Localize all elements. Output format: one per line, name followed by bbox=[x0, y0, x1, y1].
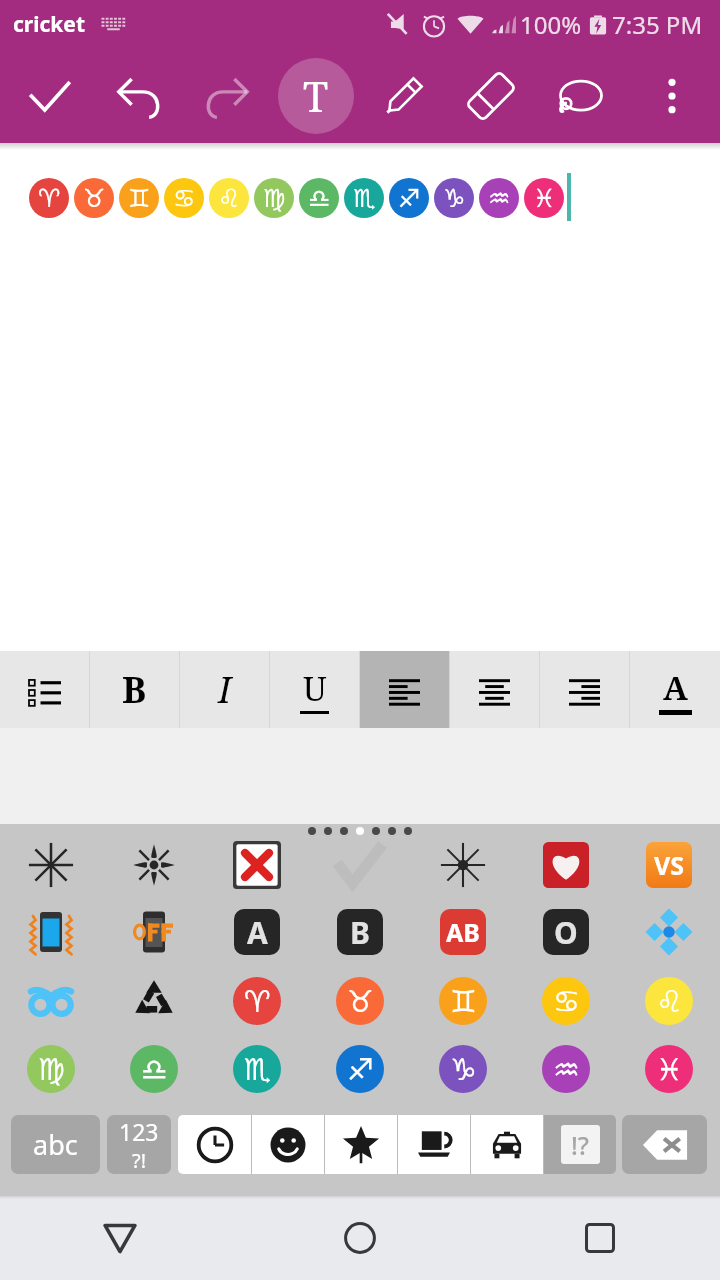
staticText: ♉ bbox=[347, 984, 374, 1019]
button[interactable]: Eight spoked asterisk bbox=[0, 832, 102, 898]
button[interactable]: Aries bbox=[205, 968, 308, 1034]
button[interactable]: Comment bbox=[542, 60, 614, 132]
staticText: ♐ bbox=[347, 1052, 374, 1087]
button[interactable]: Underline bbox=[270, 651, 359, 728]
button[interactable]: Travel and places bbox=[471, 1115, 543, 1174]
button[interactable]: Virgo bbox=[0, 1036, 102, 1102]
button[interactable]: Home bbox=[240, 1196, 480, 1280]
staticText: B bbox=[350, 912, 370, 953]
staticText: ♈ bbox=[244, 984, 271, 1019]
button[interactable]: Food and drink bbox=[398, 1115, 470, 1174]
button[interactable]: Scorpio bbox=[205, 1036, 308, 1102]
button[interactable]: Diamond with a dot bbox=[617, 899, 720, 965]
staticText: ♉ bbox=[83, 184, 106, 213]
button[interactable]: Pen bbox=[368, 60, 440, 132]
button[interactable]: Gemini bbox=[411, 968, 514, 1034]
staticText: U bbox=[303, 666, 327, 711]
button[interactable]: Taurus bbox=[308, 968, 411, 1034]
button[interactable]: Eight pointed star bbox=[411, 832, 514, 898]
staticText: ♑ bbox=[443, 184, 466, 213]
staticText: ♓ bbox=[656, 1052, 683, 1087]
staticText: ♌ bbox=[218, 184, 241, 213]
staticText: A bbox=[663, 665, 688, 710]
button[interactable]: VS button bbox=[617, 832, 720, 898]
button[interactable]: O button bbox=[514, 899, 617, 965]
staticText: abc bbox=[33, 1126, 78, 1163]
button[interactable]: More options bbox=[636, 60, 708, 132]
staticText: B bbox=[122, 665, 147, 714]
button[interactable]: Symbols bbox=[544, 1115, 616, 1174]
button[interactable]: Vibration mode bbox=[0, 899, 102, 965]
button[interactable]: Capricorn bbox=[411, 1036, 514, 1102]
staticText: A bbox=[247, 912, 268, 953]
button[interactable]: B button bbox=[308, 899, 411, 965]
button[interactable]: Eraser bbox=[455, 60, 527, 132]
staticText: ♐ bbox=[398, 184, 421, 213]
button[interactable]: Bold bbox=[90, 651, 179, 728]
button[interactable]: Sagittarius bbox=[308, 1036, 411, 1102]
button[interactable]: Heart decoration bbox=[514, 832, 617, 898]
staticText: 123 bbox=[119, 1116, 159, 1147]
button[interactable]: Done bbox=[14, 60, 86, 132]
button[interactable]: Cross mark button bbox=[205, 832, 308, 898]
staticText: ♏ bbox=[353, 184, 376, 213]
staticText: I bbox=[218, 665, 232, 714]
staticText: ♒ bbox=[488, 184, 511, 213]
button[interactable]: Smileys and people bbox=[252, 1115, 324, 1174]
staticText: ♏ bbox=[244, 1052, 271, 1087]
staticText: cricket bbox=[13, 10, 86, 39]
staticText: 100% bbox=[520, 8, 582, 41]
staticText: ♌ bbox=[656, 984, 683, 1019]
button[interactable]: 123 bbox=[107, 1115, 171, 1174]
staticText: ♈ bbox=[38, 184, 61, 213]
staticText: !? bbox=[571, 1128, 590, 1162]
button[interactable]: A button bbox=[205, 899, 308, 965]
button[interactable]: Backspace bbox=[622, 1115, 707, 1174]
button[interactable]: AB button bbox=[411, 899, 514, 965]
button[interactable]: Align center bbox=[450, 651, 539, 728]
button[interactable]: Text tool bbox=[278, 58, 354, 134]
staticText: ♍ bbox=[38, 1052, 65, 1087]
staticText: ♑ bbox=[450, 1052, 477, 1087]
button[interactable]: Sparkle bbox=[102, 832, 205, 898]
button[interactable]: abc bbox=[11, 1115, 100, 1174]
button[interactable]: Aquarius bbox=[514, 1036, 617, 1102]
button[interactable]: Recycling symbol bbox=[102, 968, 205, 1034]
button[interactable]: Back bbox=[0, 1196, 240, 1280]
button[interactable]: Curly loop bbox=[0, 968, 102, 1034]
button[interactable]: Bulleted list bbox=[0, 651, 89, 728]
staticText: ?! bbox=[132, 1147, 147, 1174]
button[interactable]: Text color bbox=[630, 651, 720, 728]
staticText: 7:35 PM bbox=[612, 8, 703, 41]
button[interactable]: Recently used bbox=[178, 1115, 251, 1174]
button[interactable]: Cancer bbox=[514, 968, 617, 1034]
button[interactable]: Mobile phone off bbox=[102, 899, 205, 965]
staticText: ♎ bbox=[141, 1052, 168, 1087]
button[interactable]: Redo bbox=[191, 60, 263, 132]
staticText: ♒ bbox=[553, 1052, 580, 1087]
staticText: ♋ bbox=[553, 984, 580, 1019]
staticText: AB bbox=[446, 915, 480, 949]
button[interactable]: Undo bbox=[103, 60, 175, 132]
button[interactable]: Light check mark bbox=[308, 832, 411, 898]
button[interactable]: Italic bbox=[180, 651, 269, 728]
staticText: ♋ bbox=[173, 184, 196, 213]
button[interactable]: Animals and nature bbox=[325, 1115, 397, 1174]
staticText: ♓ bbox=[533, 184, 556, 213]
button[interactable]: Align right bbox=[540, 651, 629, 728]
staticText: ♊ bbox=[450, 984, 477, 1019]
staticText: T bbox=[303, 68, 329, 124]
button[interactable]: Align left bbox=[360, 651, 449, 728]
staticText: ♊ bbox=[128, 184, 151, 213]
button[interactable]: Leo bbox=[617, 968, 720, 1034]
button[interactable]: Pisces bbox=[617, 1036, 720, 1102]
button[interactable]: Recents bbox=[480, 1196, 720, 1280]
button[interactable]: Libra bbox=[102, 1036, 205, 1102]
staticText: VS bbox=[654, 848, 685, 882]
staticText: ♍ bbox=[263, 184, 286, 213]
staticText: ♎ bbox=[308, 184, 331, 213]
staticText: O bbox=[554, 912, 578, 953]
